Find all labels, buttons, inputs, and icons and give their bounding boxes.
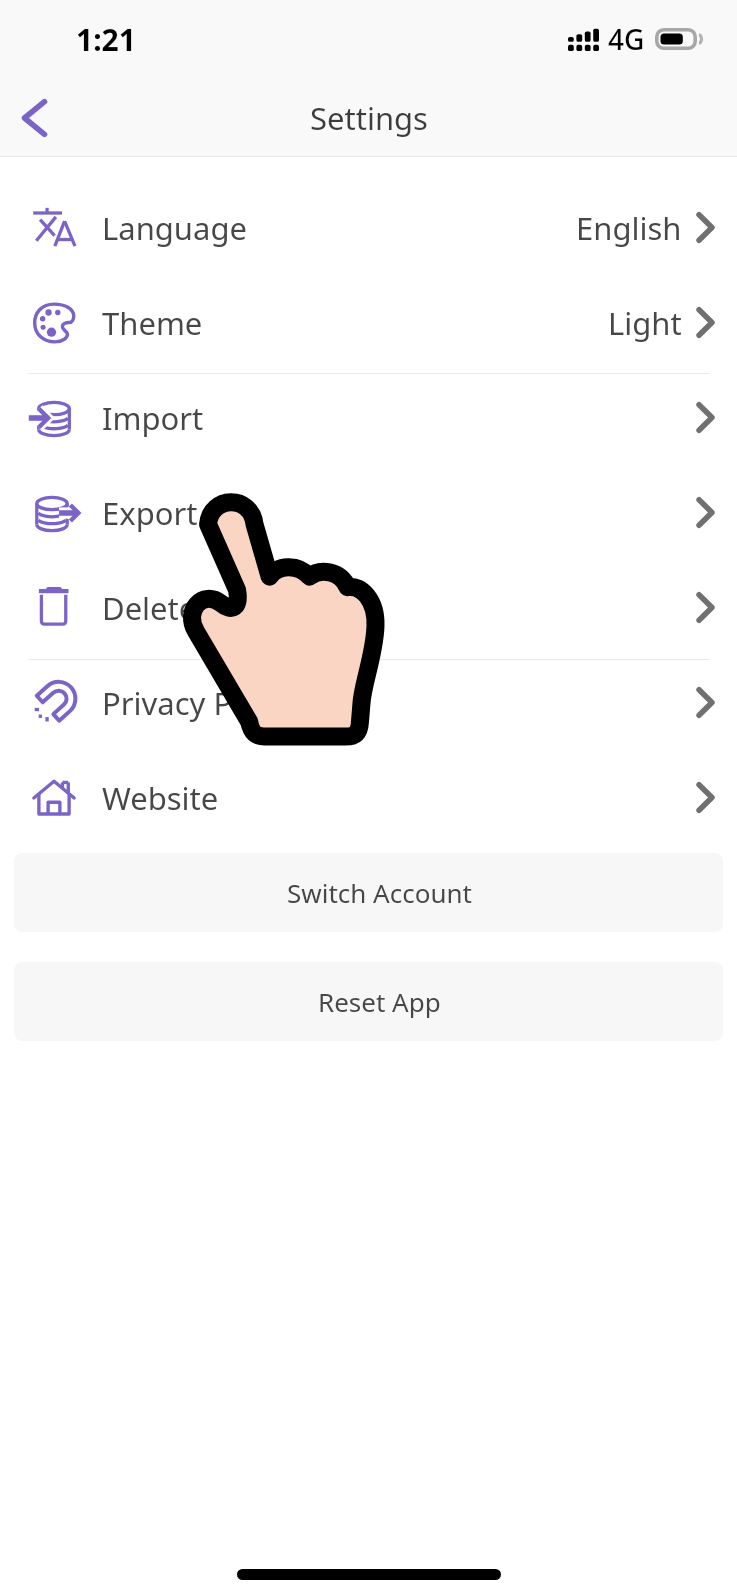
button[interactable]: Delete (0, 560, 737, 655)
staticText: Delete (102, 587, 197, 629)
staticText: Privacy Policy (102, 682, 298, 724)
staticText: Light (608, 302, 682, 344)
button[interactable]: Website (0, 750, 737, 845)
staticText: 4G (608, 20, 645, 58)
button[interactable]: Back (2, 86, 66, 150)
staticText: English (576, 207, 682, 249)
staticText: Switch Account (287, 875, 472, 910)
staticText: Theme (102, 302, 203, 344)
staticText: Language (102, 207, 247, 249)
staticText: Import (102, 397, 204, 439)
button[interactable]: Reset App (14, 962, 723, 1041)
staticText: 1:21 (76, 19, 136, 60)
button[interactable]: Switch Account (14, 853, 723, 932)
button[interactable]: Import (0, 370, 737, 465)
staticText: Settings (310, 97, 428, 139)
staticText: Reset App (318, 984, 441, 1019)
button[interactable]: Privacy Policy (0, 655, 737, 750)
button[interactable]: Theme (0, 275, 737, 370)
button[interactable]: Language (0, 180, 737, 275)
staticText: Website (102, 777, 219, 819)
button[interactable]: Export (0, 465, 737, 560)
staticText: Export (102, 492, 198, 534)
